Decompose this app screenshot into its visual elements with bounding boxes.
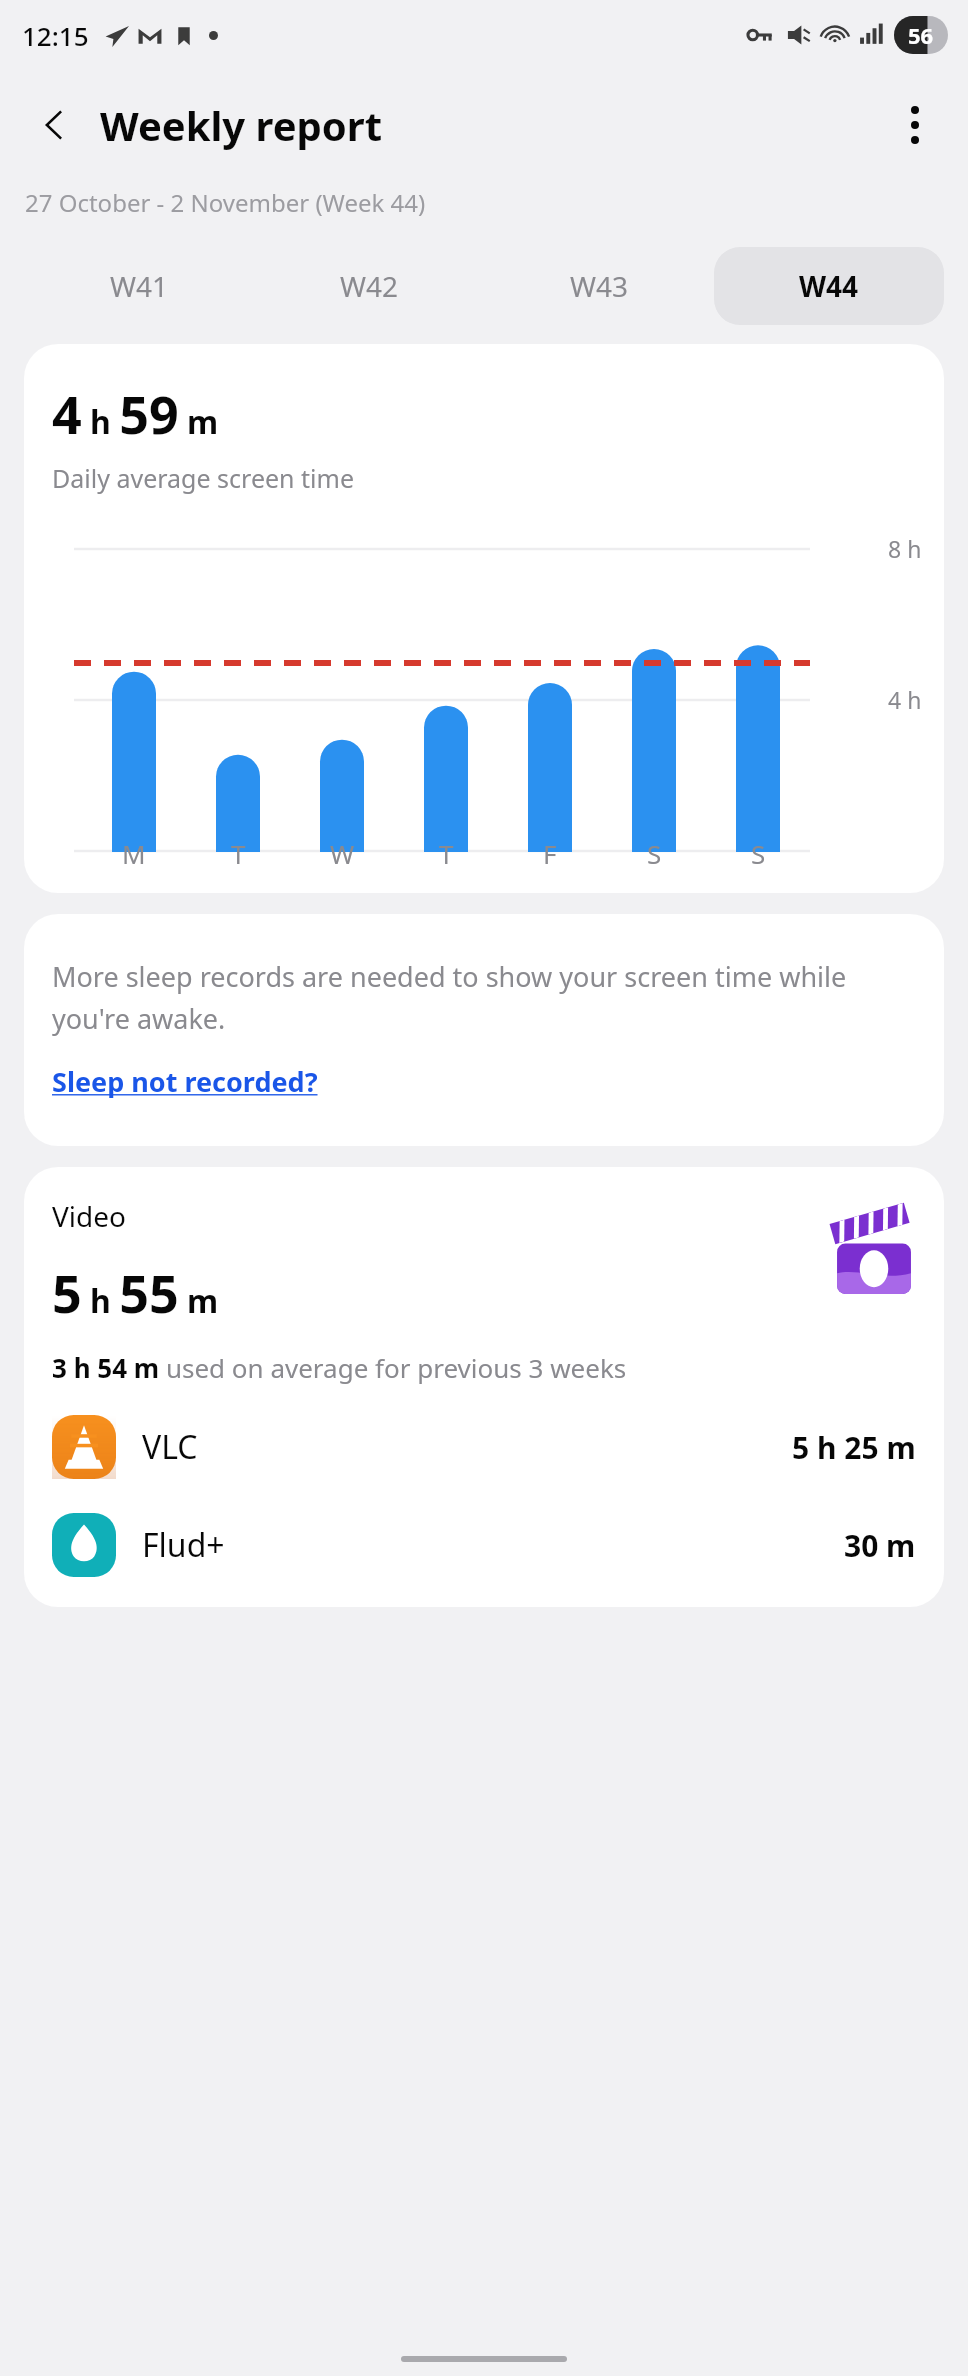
staticText: S — [647, 836, 662, 871]
staticText: T — [439, 836, 454, 871]
staticText: W43 — [570, 267, 629, 305]
button[interactable]: Sleep not recorded? — [52, 1063, 318, 1100]
staticText: W44 — [799, 267, 859, 305]
button[interactable]: Back — [26, 96, 84, 154]
staticText: 27 October - 2 November (Week 44) — [25, 186, 426, 219]
button[interactable]: Flud+ — [52, 1513, 916, 1577]
staticText: Video — [52, 1197, 126, 1235]
button[interactable]: W41 — [24, 247, 254, 325]
staticText: More sleep records are needed to show yo… — [52, 958, 916, 1037]
staticText: Sleep not recorded? — [52, 1063, 318, 1100]
staticText: 3 h 54 m used on average for previous 3 … — [52, 1350, 627, 1385]
staticText: S — [751, 836, 766, 871]
button[interactable]: W44 — [714, 247, 944, 325]
staticText: 4 h — [888, 684, 922, 715]
staticText: 5 h 25 m — [792, 1427, 916, 1468]
staticText: Flud+ — [142, 1523, 225, 1567]
button[interactable]: VLC — [52, 1415, 916, 1479]
staticText: W41 — [110, 267, 169, 305]
staticText: W — [330, 836, 355, 871]
staticText: W42 — [340, 267, 399, 305]
staticText: 30 m — [844, 1525, 916, 1566]
staticText: Daily average screen time — [52, 461, 354, 495]
button[interactable]: W43 — [484, 247, 714, 325]
staticText: Weekly report — [100, 98, 383, 152]
button[interactable]: W42 — [254, 247, 484, 325]
staticText: VLC — [142, 1425, 198, 1469]
button[interactable]: More options — [886, 96, 944, 154]
staticText: 5 h 55 m — [52, 1257, 219, 1328]
staticText: 56 — [908, 20, 934, 50]
staticText: 4 h 59 m — [52, 378, 219, 449]
staticText: 8 h — [888, 533, 922, 564]
staticText: 12:15 — [22, 18, 89, 53]
staticText: T — [231, 836, 246, 871]
staticText: M — [122, 836, 146, 871]
staticText: F — [543, 836, 557, 871]
